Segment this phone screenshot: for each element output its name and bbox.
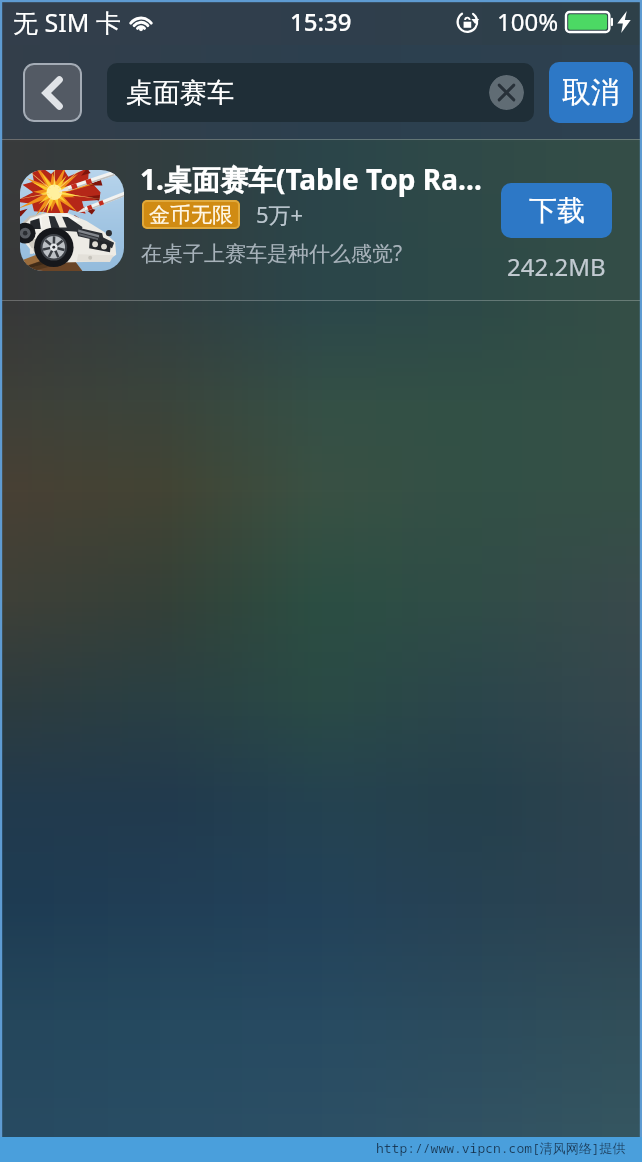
- staticText: 金币无限: [149, 202, 233, 228]
- button[interactable]: 桌面赛车: [107, 63, 534, 122]
- button[interactable]: Back: [23, 63, 82, 122]
- staticText: 242.2MB: [507, 250, 606, 283]
- button[interactable]: 1.桌面赛车(Table Top Ra…: [0, 140, 642, 300]
- staticText: 无 SIM 卡: [13, 5, 121, 39]
- staticText: 下载: [529, 193, 585, 228]
- button[interactable]: Clear search: [489, 75, 524, 110]
- staticText: 1.桌面赛车(Table Top Ra…: [140, 160, 482, 198]
- staticText: 5万+: [256, 199, 304, 229]
- staticText: 取消: [562, 74, 620, 111]
- button[interactable]: 取消: [549, 62, 633, 123]
- button[interactable]: 下载: [501, 183, 612, 238]
- staticText: 100%: [497, 5, 559, 38]
- staticText: 桌面赛车: [126, 76, 234, 110]
- staticText: 在桌子上赛车是种什么感觉?: [141, 239, 403, 268]
- staticText: 15:39: [290, 5, 352, 38]
- staticText: http://www.vipcn.com[清风网络]提供: [376, 1139, 626, 1157]
